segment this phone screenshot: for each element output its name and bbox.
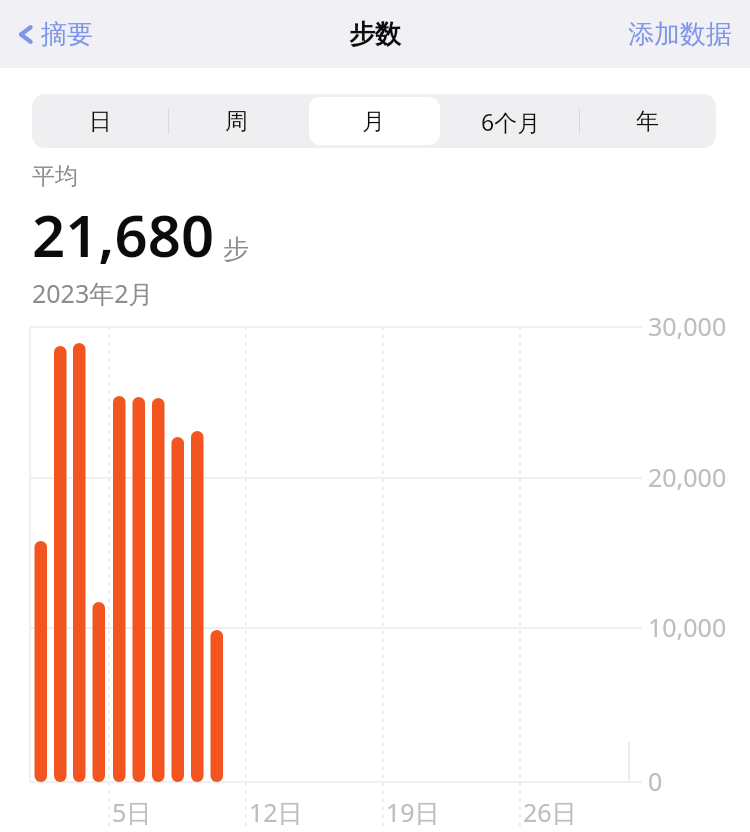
staticText: 平均 — [32, 162, 78, 191]
button[interactable]: 月 — [305, 94, 442, 148]
staticText: 6个月 — [481, 106, 541, 137]
staticText: 年 — [636, 107, 659, 136]
staticText: 日 — [89, 107, 112, 136]
staticText: 步数 — [349, 18, 401, 51]
staticText: 摘要 — [41, 18, 93, 51]
staticText: 2023年2月 — [32, 276, 154, 310]
staticText: 步 — [223, 233, 249, 266]
staticText: 19日 — [386, 795, 440, 829]
staticText: 0 — [648, 764, 663, 798]
staticText: 26日 — [523, 795, 577, 829]
staticText: 月 — [362, 107, 385, 136]
staticText: 20,000 — [648, 460, 727, 494]
staticText: 21,680 — [32, 195, 215, 274]
staticText: 周 — [225, 107, 248, 136]
staticText: 5日 — [112, 795, 152, 829]
button[interactable]: 添加数据 — [620, 12, 740, 57]
button[interactable]: 年 — [579, 94, 716, 148]
button[interactable]: 6个月 — [442, 94, 579, 148]
staticText: 添加数据 — [628, 18, 732, 51]
staticText: 12日 — [249, 795, 303, 829]
button[interactable]: 返回摘要 — [10, 12, 101, 57]
button[interactable]: 周 — [168, 94, 305, 148]
staticText: 10,000 — [648, 610, 727, 644]
button[interactable]: 日 — [32, 94, 168, 148]
staticText: 30,000 — [648, 309, 727, 343]
